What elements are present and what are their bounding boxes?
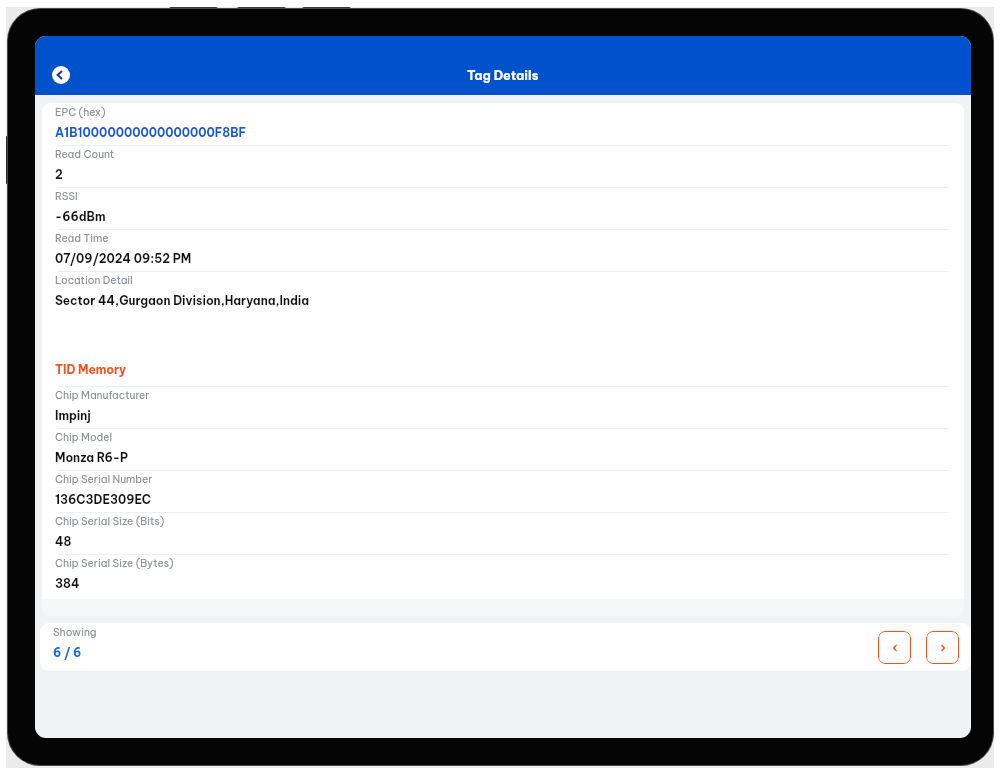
staticText: 07/09/2024 09:52 PM (55, 251, 192, 266)
staticText: Chip Serial Size (Bits) (55, 515, 165, 528)
staticText: 136C3DE309EC (55, 492, 152, 507)
staticText: RSSI (55, 190, 78, 203)
staticText: Location Detail (55, 274, 133, 287)
staticText: -66dBm (55, 209, 106, 224)
button[interactable]: Back (52, 66, 70, 84)
staticText: Sector 44,Gurgaon Division,Haryana,India (55, 293, 310, 308)
staticText: Impinj (55, 408, 91, 423)
button[interactable]: Next page (926, 631, 959, 664)
staticText: A1B10000000000000000F8BF (55, 125, 247, 140)
staticText: Chip Manufacturer (55, 389, 150, 402)
staticText: EPC (hex) (55, 106, 106, 119)
staticText: 384 (55, 576, 80, 591)
staticText: TID Memory (55, 362, 127, 377)
staticText: 6 / 6 (53, 645, 82, 660)
staticText: Chip Serial Number (55, 473, 153, 486)
staticText: Chip Serial Size (Bytes) (55, 557, 174, 570)
staticText: Tag Details (467, 67, 539, 83)
staticText: Showing (53, 626, 97, 639)
staticText: Chip Model (55, 431, 113, 444)
staticText: Read Count (55, 148, 115, 161)
staticText: Read Time (55, 232, 109, 245)
staticText: 2 (55, 167, 63, 182)
staticText: Monza R6-P (55, 450, 128, 465)
button[interactable]: Previous page (878, 631, 911, 664)
staticText: 48 (55, 534, 72, 549)
